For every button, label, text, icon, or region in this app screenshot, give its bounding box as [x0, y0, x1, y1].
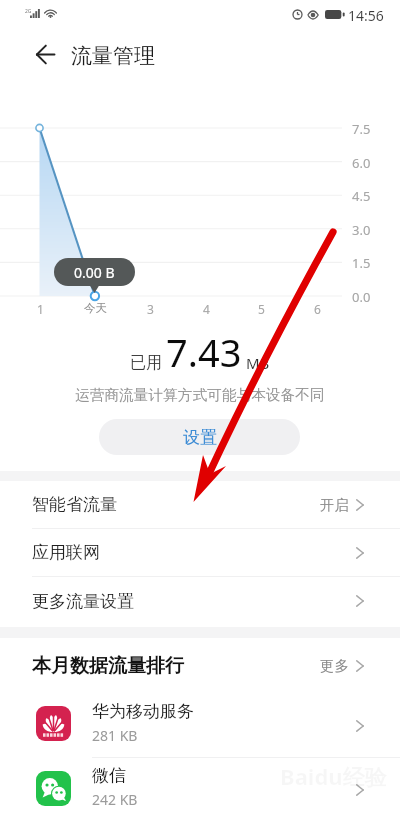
staticText: 开启 — [320, 496, 349, 514]
button[interactable]: 微信 — [0, 758, 400, 816]
button[interactable]: 设置 — [99, 419, 300, 455]
staticText: 7.43 — [166, 326, 242, 378]
staticText: 华为移动服务 — [92, 701, 194, 722]
staticText: 更多 — [320, 657, 349, 675]
button[interactable]: 智能省流量 — [0, 481, 400, 529]
staticText: 设置 — [183, 427, 217, 448]
button[interactable]: 更多流量设置 — [0, 577, 400, 625]
staticText: 0.00 B — [74, 263, 115, 282]
staticText: MB — [246, 353, 270, 373]
staticText: 运营商流量计算方式可能与本设备不同 — [75, 386, 325, 405]
staticText: 4 — [203, 301, 210, 317]
staticText: 1 — [37, 301, 44, 317]
staticText: 7.5 — [352, 120, 371, 138]
staticText: 流量管理 — [71, 43, 155, 69]
button[interactable]: Back — [23, 32, 67, 76]
staticText: 智能省流量 — [32, 494, 117, 515]
button[interactable]: 应用联网 — [0, 529, 400, 577]
staticText: 281 KB — [92, 726, 138, 745]
staticText: 6 — [314, 301, 321, 317]
staticText: 已用 — [130, 353, 162, 373]
button[interactable]: 华为移动服务 — [0, 694, 400, 758]
staticText: 3.0 — [352, 221, 371, 239]
staticText: Baidu经验 — [280, 761, 387, 791]
staticText: 微信 — [92, 765, 126, 786]
staticText: 更多流量设置 — [32, 591, 134, 612]
staticText: 本月数据流量排行 — [32, 654, 184, 678]
staticText: 2G — [25, 8, 32, 15]
staticText: 242 KB — [92, 790, 138, 809]
staticText: 应用联网 — [32, 542, 100, 563]
staticText: 4.5 — [352, 187, 371, 205]
staticText: 1.5 — [352, 254, 371, 272]
staticText: 0.0 — [352, 288, 371, 306]
staticText: 14:56 — [348, 6, 384, 25]
staticText: 3 — [147, 301, 154, 317]
staticText: 6.0 — [352, 154, 371, 172]
staticText: 5 — [258, 301, 265, 317]
button[interactable]: 更多 — [320, 649, 364, 683]
staticText: 今天 — [84, 301, 107, 315]
